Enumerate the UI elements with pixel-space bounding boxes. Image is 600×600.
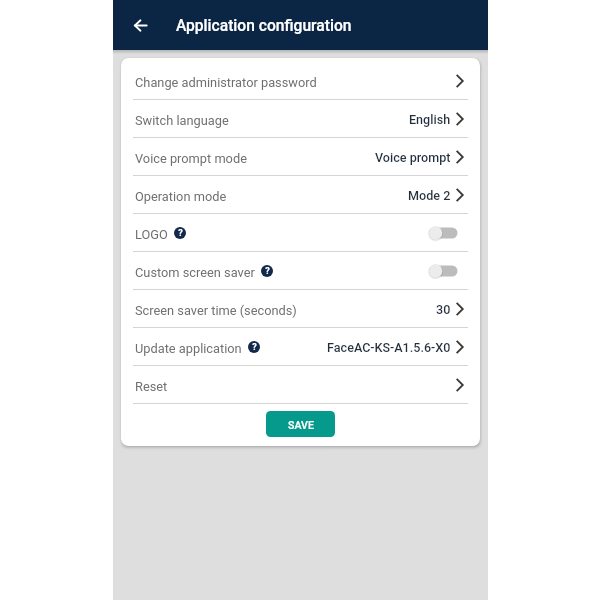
staticText: Voice prompt mode bbox=[135, 151, 247, 166]
staticText: Application configuration bbox=[176, 17, 352, 35]
staticText: ? bbox=[265, 266, 270, 277]
staticText: Switch language bbox=[135, 113, 229, 128]
staticText: Mode 2 bbox=[408, 188, 451, 203]
staticText: Update application bbox=[135, 341, 242, 356]
staticText: 30 bbox=[436, 302, 451, 317]
staticText: ? bbox=[178, 228, 183, 239]
button[interactable]: Custom screen saver bbox=[121, 252, 480, 289]
button[interactable]: Screen saver time (seconds) bbox=[121, 290, 480, 327]
staticText: LOGO bbox=[135, 227, 168, 242]
button[interactable]: LOGO bbox=[121, 214, 480, 251]
staticText: Voice prompt bbox=[375, 150, 451, 165]
staticText: Custom screen saver bbox=[135, 265, 255, 280]
button[interactable]: Change administrator password bbox=[121, 62, 480, 99]
button[interactable]: Toggle Custom screen saver bbox=[429, 263, 458, 279]
button[interactable]: Operation mode bbox=[121, 176, 480, 213]
staticText: Operation mode bbox=[135, 189, 227, 204]
staticText: English bbox=[409, 112, 451, 127]
staticText: Reset bbox=[135, 379, 168, 394]
staticText: ? bbox=[252, 342, 257, 353]
staticText: Screen saver time (seconds) bbox=[135, 303, 297, 318]
staticText: SAVE bbox=[288, 419, 314, 431]
staticText: FaceAC-KS-A1.5.6-X0 bbox=[327, 340, 451, 355]
staticText: Change administrator password bbox=[135, 75, 317, 90]
button[interactable]: Voice prompt mode bbox=[121, 138, 480, 175]
button[interactable]: Switch language bbox=[121, 100, 480, 137]
button[interactable]: Reset bbox=[121, 366, 480, 403]
button[interactable]: SAVE bbox=[266, 411, 335, 437]
button[interactable]: Toggle LOGO bbox=[429, 225, 458, 241]
button[interactable]: Update application bbox=[121, 328, 480, 365]
button[interactable]: Back bbox=[120, 5, 160, 45]
